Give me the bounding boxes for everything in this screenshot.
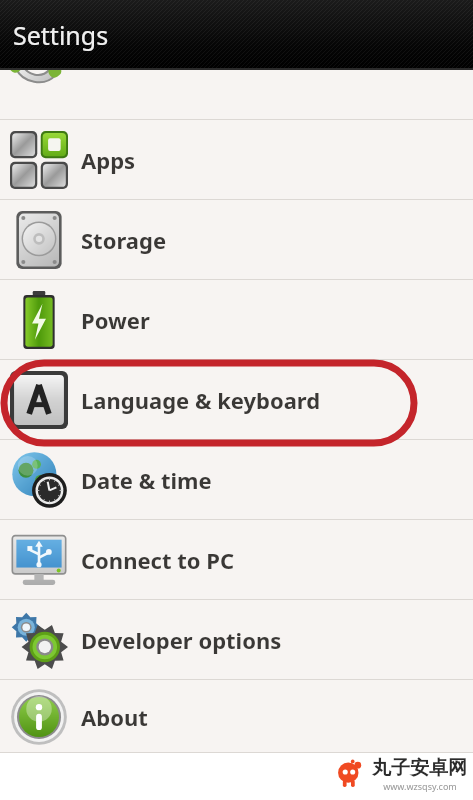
button[interactable]: Date & time: [0, 440, 473, 520]
staticText: Developer options: [81, 625, 282, 655]
staticText: Call: [81, 45, 122, 75]
button[interactable]: Apps: [0, 120, 473, 200]
button[interactable]: Storage: [0, 200, 473, 280]
staticText: 丸子安卓网: [372, 756, 467, 780]
staticText: Connect to PC: [81, 545, 235, 575]
button[interactable]: Power: [0, 280, 473, 360]
button[interactable]: Connect to PC: [0, 520, 473, 600]
staticText: Date & time: [81, 465, 212, 495]
button[interactable]: Developer options: [0, 600, 473, 680]
staticText: Power: [81, 305, 150, 335]
button[interactable]: About: [0, 680, 473, 753]
staticText: Storage: [81, 225, 167, 255]
staticText: Apps: [81, 145, 136, 175]
button[interactable]: Language & keyboard: [0, 360, 473, 440]
staticText: Settings: [13, 18, 109, 52]
staticText: Language & keyboard: [81, 385, 321, 415]
button[interactable]: Call: [0, 0, 473, 120]
staticText: www.wzsqsy.com: [383, 780, 457, 792]
staticText: About: [81, 702, 148, 732]
